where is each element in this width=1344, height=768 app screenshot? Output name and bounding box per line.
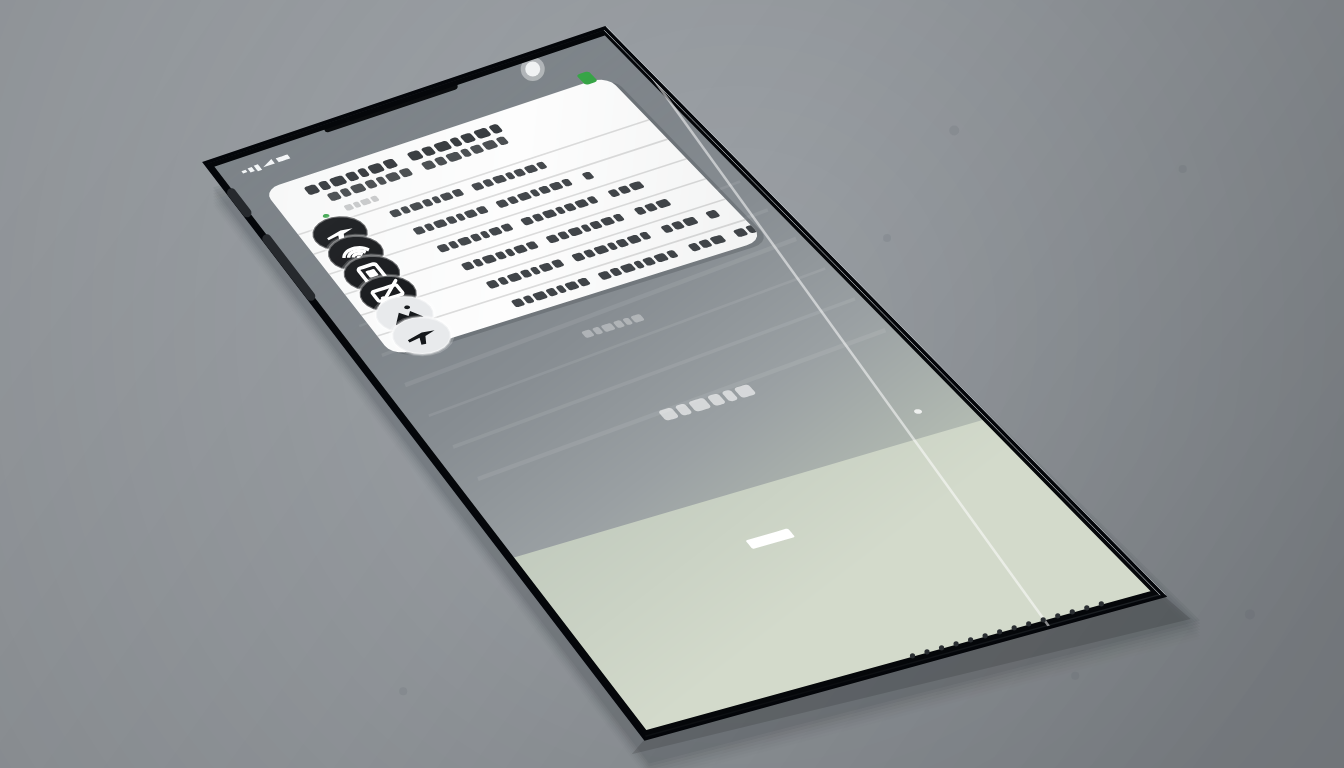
- button[interactable]: Phone product shot showing settings list: [0, 0, 1344, 768]
